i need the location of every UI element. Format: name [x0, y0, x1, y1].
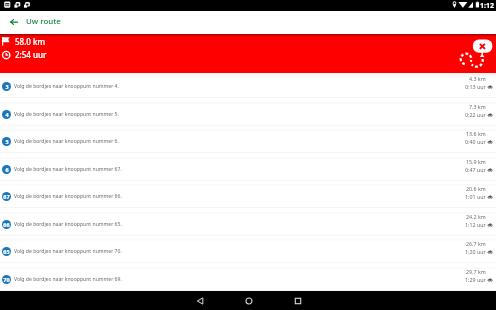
staticText: 1:12 uur — [465, 221, 486, 228]
button[interactable]: 6 — [0, 156, 496, 184]
button[interactable]: Recents — [280, 291, 316, 310]
staticText: Uw route — [26, 16, 61, 27]
staticText: 0:40 uur — [465, 138, 486, 145]
staticText: 0:22 uur — [465, 111, 486, 118]
button[interactable]: 65 — [0, 238, 496, 266]
staticText: 67 — [3, 193, 10, 200]
button[interactable]: 66 — [0, 211, 496, 239]
button[interactable]: Back — [182, 291, 218, 310]
button[interactable]: 5 — [0, 128, 496, 156]
button[interactable]: 3 — [0, 73, 496, 101]
button[interactable]: 4 — [0, 101, 496, 129]
button[interactable]: 70 — [0, 266, 496, 294]
staticText: 1:29 uur — [465, 276, 486, 283]
staticText: 29.7 km — [466, 268, 486, 275]
staticText: Volg de bordjes naar knooppunt nummer 69… — [14, 276, 122, 283]
staticText: 70 — [3, 276, 10, 283]
staticText: 4.3 km — [469, 75, 486, 82]
staticText: 0:13 uur — [465, 83, 486, 90]
staticText: 1:01 uur — [465, 193, 486, 200]
staticText: 0:47 uur — [465, 166, 486, 173]
staticText: 20.6 km — [466, 185, 486, 192]
staticText: 26.7 km — [466, 240, 486, 247]
staticText: Volg de bordjes naar knooppunt nummer 67… — [14, 166, 122, 173]
button[interactable]: Cancel route — [458, 36, 496, 71]
button[interactable]: Home — [231, 291, 267, 310]
staticText: 2:54 uur — [15, 49, 47, 60]
staticText: 6 — [5, 166, 9, 173]
staticText: 65 — [3, 248, 10, 255]
staticText: 15.9 km — [466, 158, 486, 165]
staticText: Volg de bordjes naar knooppunt nummer 6. — [14, 138, 119, 145]
staticText: 58.0 km — [15, 36, 46, 47]
staticText: Volg de bordjes naar knooppunt nummer 70… — [14, 248, 122, 255]
staticText: 24.2 km — [466, 213, 486, 220]
staticText: Volg de bordjes naar knooppunt nummer 4. — [14, 83, 119, 90]
staticText: 1:12 — [480, 1, 494, 11]
staticText: 1:20 uur — [465, 248, 486, 255]
staticText: 7.3 km — [469, 103, 486, 110]
button[interactable]: Back — [3, 11, 24, 32]
button[interactable]: 67 — [0, 183, 496, 211]
staticText: Volg de bordjes naar knooppunt nummer 5. — [14, 111, 119, 118]
staticText: 4 — [5, 111, 9, 118]
staticText: Volg de bordjes naar knooppunt nummer 66… — [14, 193, 122, 200]
staticText: 5 — [5, 138, 9, 145]
staticText: 13.6 km — [466, 130, 486, 137]
staticText: Volg de bordjes naar knooppunt nummer 65… — [14, 221, 122, 228]
staticText: 3 — [5, 83, 9, 90]
staticText: 66 — [3, 221, 10, 228]
